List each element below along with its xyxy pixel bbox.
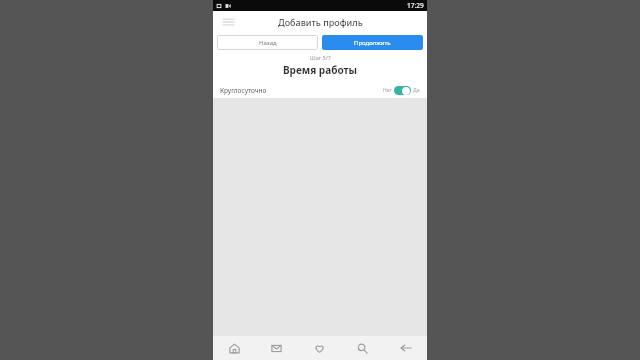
button[interactable]: Search (341, 336, 384, 360)
button[interactable]: Menu (220, 14, 236, 30)
staticText: Продолжить (354, 39, 391, 47)
staticText: Круглосуточно (220, 86, 267, 95)
button[interactable]: Back (384, 336, 427, 360)
staticText: Добавить профиль (278, 16, 363, 28)
button[interactable]: Messages (255, 336, 298, 360)
staticText: 17:29 (407, 1, 424, 10)
button[interactable]: Home (213, 336, 255, 360)
button[interactable]: Продолжить (322, 35, 423, 50)
staticText: Назад (259, 39, 277, 47)
staticText: Нет (383, 87, 392, 94)
staticText: Да (413, 87, 420, 94)
staticText: Время работы (283, 63, 358, 77)
button[interactable]: Назад (217, 35, 318, 50)
button[interactable]: Favorites (298, 336, 341, 360)
staticText: Шаг 5/7 (310, 54, 331, 61)
button[interactable]: Круглосуточно (213, 82, 427, 98)
button[interactable] (394, 86, 411, 95)
